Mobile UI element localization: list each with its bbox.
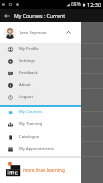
staticText: 68% — [71, 1, 81, 8]
button[interactable]: Settings — [0, 55, 81, 67]
staticText: My Appointments — [19, 146, 54, 152]
staticText: My Courses — [19, 109, 42, 115]
button[interactable]: Jane Seymour — [0, 22, 81, 43]
button[interactable]: About — [0, 79, 81, 91]
button[interactable]: My Courses — [0, 106, 81, 118]
button[interactable]: Logout — [0, 91, 81, 103]
staticText: My Courses : Current — [14, 12, 66, 19]
button[interactable]: Catalogue — [0, 131, 81, 143]
staticText: more than learning — [23, 167, 65, 173]
button[interactable]: My Appointments — [0, 143, 81, 155]
button[interactable]: Feedback — [0, 67, 81, 79]
staticText: My Profile — [19, 46, 39, 52]
staticText: My Training — [19, 121, 43, 127]
staticText: Jane Seymour — [20, 30, 48, 36]
staticText: Feedback — [19, 70, 38, 76]
staticText: 12:30 — [87, 1, 102, 8]
staticText: Catalogue — [19, 134, 39, 140]
staticText: Settings — [19, 58, 35, 64]
button[interactable]: Back — [2, 11, 12, 21]
staticText: Logout — [19, 94, 33, 100]
button[interactable]: My Training — [0, 118, 81, 130]
button[interactable]: My Profile — [0, 43, 81, 55]
staticText: About — [19, 82, 31, 88]
other: Collapse — [65, 29, 72, 36]
